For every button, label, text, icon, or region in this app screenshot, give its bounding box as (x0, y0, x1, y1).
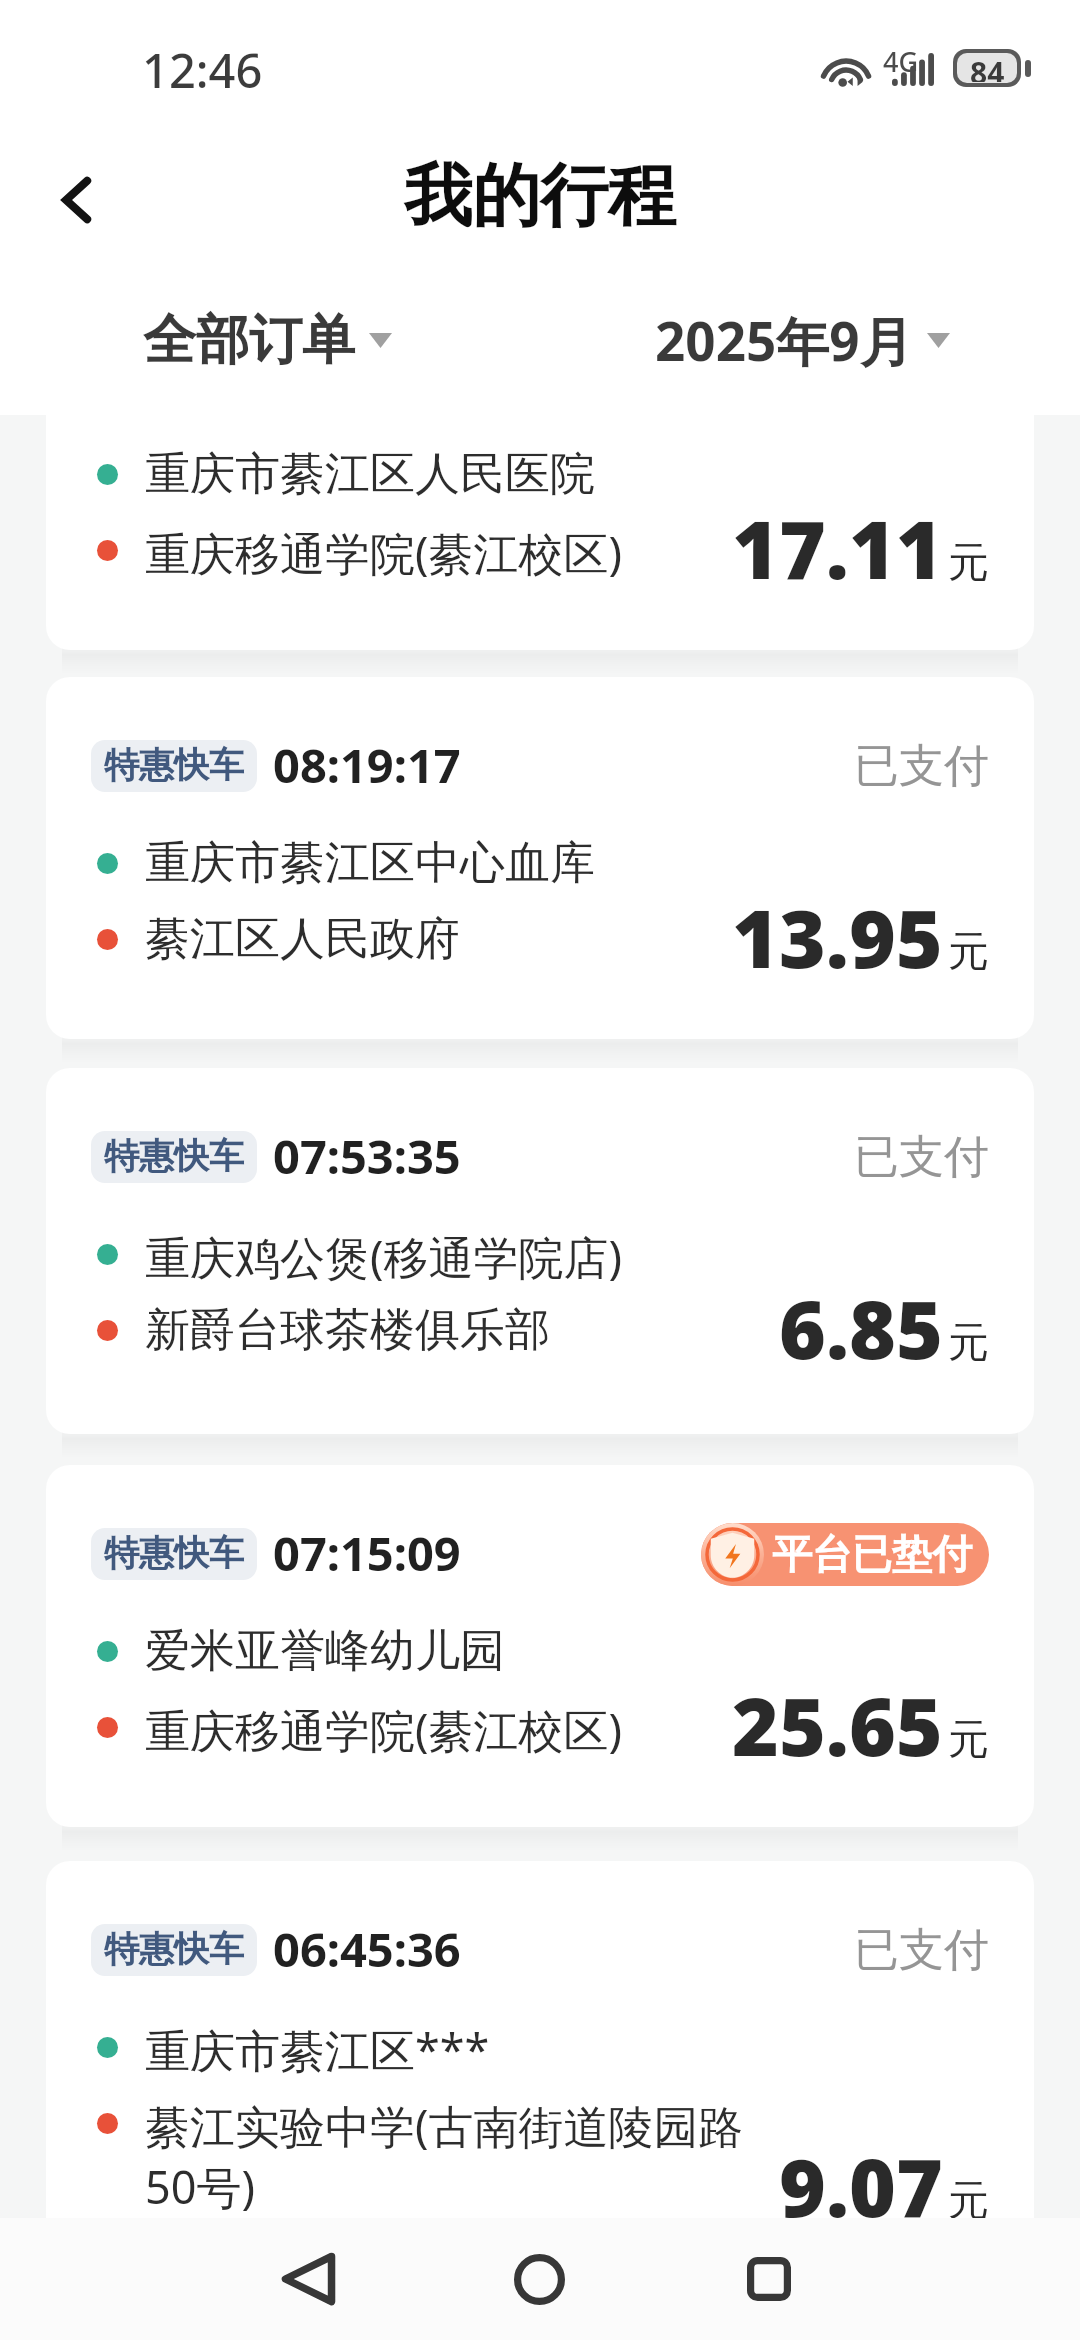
staticText: 重庆市綦江区中心血库 (145, 835, 595, 892)
staticText: 元 (948, 1714, 989, 1766)
staticText: 25.65 (732, 1670, 943, 1779)
button[interactable]: 特惠快车 (46, 415, 1034, 650)
staticText: 元 (948, 537, 989, 589)
staticText: 綦江实验中学(古南街道陵园路 50号) (145, 2095, 744, 2218)
staticText: 爱米亚誉峰幼儿园 (145, 1623, 505, 1680)
staticText: 重庆鸡公煲(移通学院店) (145, 1226, 623, 1287)
staticText: 特惠快车 (104, 743, 244, 787)
staticText: 平台已垫付 (772, 1529, 972, 1579)
button[interactable]: Recents (714, 2224, 824, 2334)
staticText: 全部订单 (143, 307, 355, 374)
button[interactable]: 2025年9月 (655, 304, 950, 376)
staticText: 重庆市綦江区*** (145, 2019, 490, 2080)
staticText: 元 (948, 2175, 989, 2218)
staticText: 已支付 (854, 738, 989, 795)
staticText: 元 (948, 1317, 989, 1369)
staticText: 已支付 (854, 1922, 989, 1979)
staticText: 新爵台球茶楼俱乐部 (145, 1302, 550, 1359)
button[interactable]: 特惠快车 (46, 677, 1034, 1039)
button[interactable]: Home (484, 2224, 594, 2334)
staticText: 17.11 (732, 493, 943, 602)
button[interactable]: Back (253, 2224, 363, 2334)
staticText: 84 (970, 53, 1005, 82)
staticText: 07:15:09 (273, 1521, 461, 1585)
button[interactable]: 特惠快车 (46, 1465, 1034, 1827)
button[interactable]: 全部订单 (143, 307, 392, 374)
button[interactable]: Back (28, 150, 128, 250)
button[interactable]: 特惠快车 (46, 1068, 1034, 1434)
staticText: 07:53:35 (273, 1124, 461, 1188)
staticText: 4G (883, 43, 919, 80)
staticText: 重庆市綦江区人民医院 (145, 446, 595, 503)
staticText: 2025年9月 (655, 304, 913, 376)
staticText: 重庆移通学院(綦江校区) (145, 522, 623, 583)
staticText: 特惠快车 (104, 1134, 244, 1178)
staticText: 已支付 (854, 1129, 989, 1186)
staticText: 特惠快车 (104, 1927, 244, 1971)
staticText: 6.85 (779, 1273, 943, 1382)
staticText: 06:45:36 (273, 1917, 461, 1981)
staticText: 我的行程 (404, 154, 676, 240)
staticText: 13.95 (732, 882, 943, 991)
staticText: 綦江区人民政府 (145, 911, 460, 968)
staticText: 特惠快车 (104, 1531, 244, 1575)
staticText: 元 (948, 926, 989, 978)
staticText: 12:46 (142, 38, 263, 102)
staticText: 9.07 (779, 2131, 943, 2218)
button[interactable]: 平台已垫付 (701, 1523, 989, 1586)
button[interactable]: 特惠快车 (46, 1861, 1034, 2218)
staticText: 重庆移通学院(綦江校区) (145, 1699, 623, 1760)
staticText: 08:19:17 (273, 733, 461, 797)
